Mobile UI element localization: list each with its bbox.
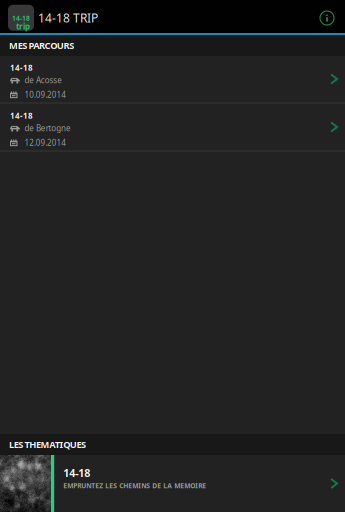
staticText: trip [16, 21, 30, 32]
button[interactable]: Info [319, 10, 335, 26]
staticText: 14-18 [10, 110, 33, 121]
staticText: LES THEMATIQUES [9, 438, 86, 451]
staticText: 14-18 [12, 14, 30, 23]
staticText: 14-18 [63, 466, 90, 480]
staticText: 10.09.2014 [24, 89, 66, 100]
staticText: de Acosse [24, 75, 62, 85]
staticText: 14-18 [10, 62, 33, 73]
staticText: de Bertogne [24, 123, 71, 133]
button[interactable]: 14-18 [0, 56, 345, 102]
button[interactable]: 14-18 [0, 455, 345, 512]
staticText: 14-18 TRIP [38, 10, 98, 26]
staticText: MES PARCOURS [9, 39, 74, 52]
staticText: 12.09.2014 [24, 137, 66, 148]
staticText: EMPRUNTEZ LES CHEMINS DE LA MEMOIRE [63, 481, 206, 490]
button[interactable]: 14-18 [0, 104, 345, 150]
